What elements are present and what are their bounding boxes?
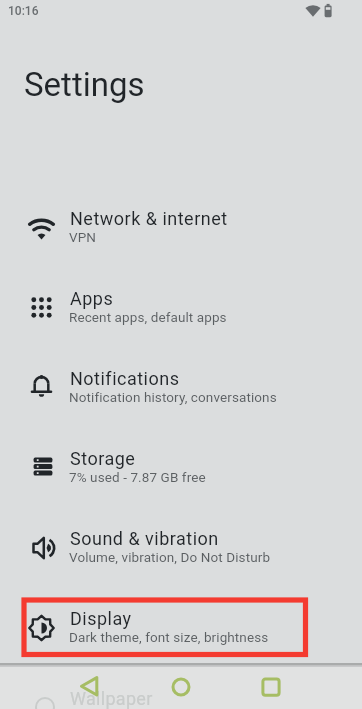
staticText: Notification history, conversations [69,389,277,405]
staticText: Recent apps, default apps [69,309,227,325]
button[interactable] [65,663,113,709]
staticText: Display [70,608,132,629]
staticText: 10:16 [8,4,39,18]
button[interactable] [247,663,295,709]
staticText: 7% used - 7.87 GB free [69,469,206,485]
staticText: VPN [69,229,97,245]
button[interactable]: Notifications [0,348,362,428]
staticText: Apps [70,288,114,309]
button[interactable]: Storage [0,428,362,508]
button[interactable] [157,663,205,709]
staticText: Storage [70,448,136,469]
button[interactable]: Apps [0,268,362,348]
staticText: Wallpaper [70,688,153,709]
button[interactable]: Display [0,588,362,668]
button[interactable]: Sound & vibration [0,508,362,588]
button[interactable]: Network & internet [0,188,362,268]
staticText: Network & internet [70,208,228,229]
staticText: Sound & vibration [70,528,219,549]
staticText: Dark theme, font size, brightness [69,629,269,645]
staticText: Volume, vibration, Do Not Disturb [69,549,271,565]
staticText: Settings [24,65,145,104]
staticText: Notifications [70,368,180,389]
